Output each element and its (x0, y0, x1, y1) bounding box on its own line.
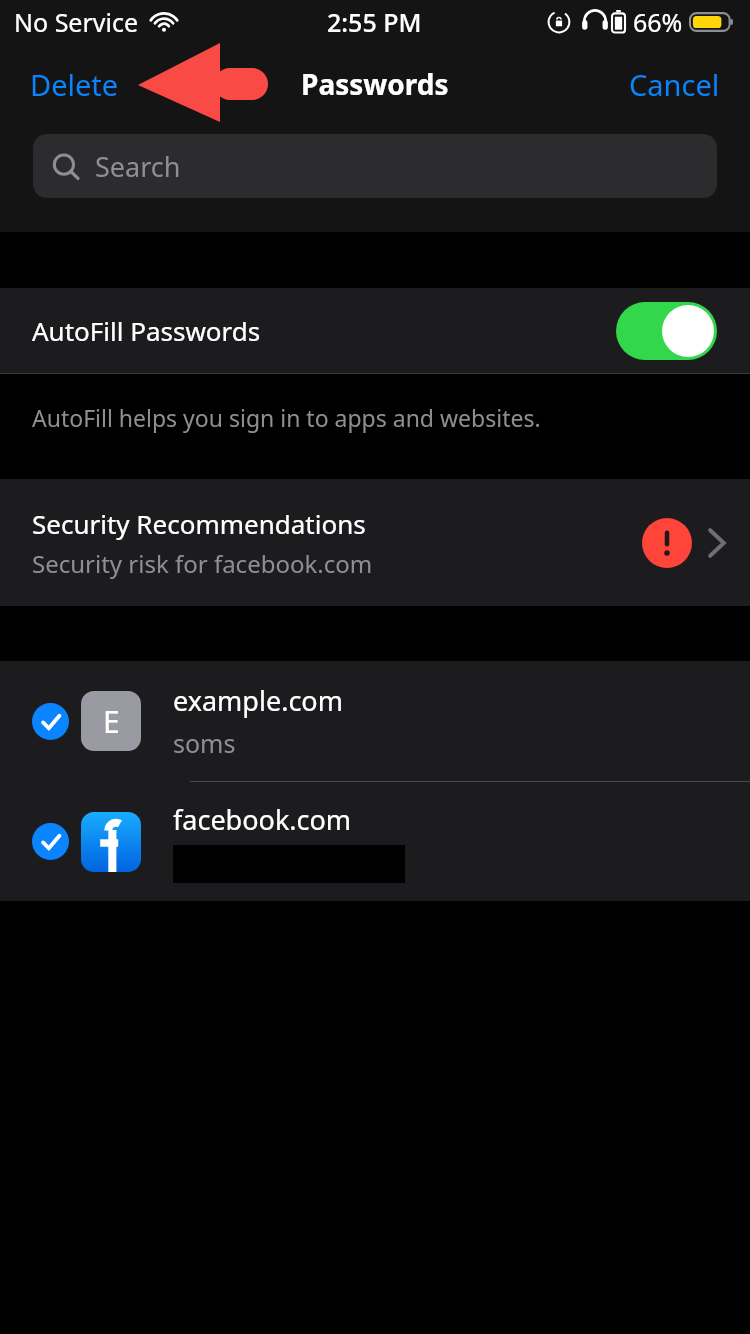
staticText: E (103, 701, 120, 742)
button[interactable]: Cancel (617, 57, 750, 112)
staticText: 2:55 PM (327, 5, 422, 39)
staticText: Security Recommendations (32, 506, 366, 541)
button[interactable]: Selected (0, 782, 750, 901)
staticText: 66% (633, 5, 683, 39)
staticText: Security risk for facebook.com (32, 547, 373, 580)
staticText: facebook.com (173, 801, 352, 838)
staticText: No Service (14, 5, 139, 39)
staticText: Passwords (301, 65, 449, 103)
staticText: AutoFill Passwords (32, 313, 261, 348)
button[interactable]: AutoFill Passwords (0, 288, 750, 373)
staticText: example.com (173, 682, 343, 719)
button[interactable]: AutoFill Passwords toggle, on (616, 302, 717, 360)
button[interactable]: Selected (0, 661, 750, 781)
button[interactable]: Search (33, 134, 717, 198)
button[interactable]: Delete (0, 57, 131, 112)
button[interactable]: Security Recommendations (0, 479, 750, 606)
staticText: Delete (30, 65, 119, 104)
other: Selected (32, 823, 69, 860)
staticText: Cancel (629, 65, 720, 104)
staticText: Search (95, 148, 181, 185)
other: Selected (32, 703, 69, 740)
staticText: soms (173, 726, 236, 760)
other: Security warning (642, 518, 692, 568)
staticText: AutoFill helps you sign in to apps and w… (32, 402, 541, 433)
